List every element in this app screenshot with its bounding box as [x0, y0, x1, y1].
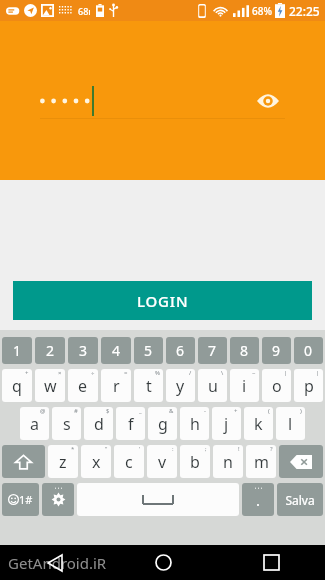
button[interactable]: f — [116, 407, 145, 440]
staticText: h — [190, 413, 200, 435]
button[interactable]: 3 — [68, 337, 98, 364]
button[interactable]: p — [294, 369, 323, 402]
button[interactable]: Back — [0, 545, 109, 580]
staticText: 1# — [19, 492, 33, 507]
button[interactable]: 7 — [198, 337, 227, 364]
button[interactable]: 6 — [166, 337, 195, 364]
staticText: ÷ — [91, 369, 95, 377]
button[interactable]: 8 — [230, 337, 259, 364]
staticText: + — [234, 407, 238, 415]
button[interactable]: u — [198, 369, 227, 402]
staticText: 1 — [13, 341, 22, 360]
staticText: s — [63, 413, 71, 435]
button[interactable]: d — [84, 407, 113, 440]
staticText: $ — [106, 407, 110, 415]
button[interactable]: z — [48, 445, 78, 478]
staticText: 22:25 — [289, 3, 320, 19]
button[interactable]: n — [213, 445, 243, 478]
button[interactable]: l — [276, 407, 305, 440]
staticText: \ — [221, 369, 224, 377]
button[interactable]: 4 — [101, 337, 131, 364]
button[interactable]: v — [147, 445, 177, 478]
staticText: 4 — [112, 341, 121, 360]
staticText: t — [146, 375, 152, 397]
staticText: - — [204, 407, 206, 415]
button[interactable]: s — [52, 407, 81, 440]
staticText: e — [78, 375, 88, 397]
button[interactable]: b — [180, 445, 210, 478]
button[interactable]: Keyboard settings — [42, 483, 74, 516]
staticText: | — [284, 369, 288, 377]
button[interactable]: e — [68, 369, 98, 402]
button[interactable]: Backspace — [279, 445, 323, 478]
staticText: c — [125, 451, 133, 473]
staticText: ! — [238, 445, 240, 453]
staticText: LOGIN — [137, 291, 189, 311]
button[interactable]: 5 — [134, 337, 163, 364]
button[interactable]: Home — [109, 545, 217, 580]
staticText: ) — [300, 407, 302, 415]
button[interactable]: w — [35, 369, 65, 402]
staticText: @ — [40, 407, 46, 415]
button[interactable]: c — [114, 445, 144, 478]
button[interactable]: Recent apps — [217, 545, 325, 580]
staticText: ( — [268, 407, 270, 415]
button[interactable]: 1 — [2, 337, 32, 364]
button[interactable]: 0 — [294, 337, 323, 364]
button[interactable]: j — [212, 407, 241, 440]
button[interactable]: Space — [77, 483, 239, 516]
button[interactable]: r — [101, 369, 131, 402]
button[interactable]: y — [166, 369, 195, 402]
staticText: GetAndroid.iR — [8, 553, 107, 573]
button[interactable]: t — [134, 369, 163, 402]
staticText: w — [44, 375, 57, 397]
staticText: " — [105, 445, 108, 453]
staticText: ? — [270, 445, 273, 453]
staticText: / — [189, 369, 192, 377]
staticText: ⋯ — [254, 483, 263, 493]
button[interactable]: m — [246, 445, 276, 478]
staticText: 2 — [46, 341, 55, 360]
staticText: ' — [139, 445, 141, 453]
button[interactable]: Show password — [40, 83, 285, 119]
staticText: u — [208, 375, 218, 397]
button[interactable]: Salva — [277, 483, 323, 516]
staticText: 68% — [252, 4, 272, 18]
staticText: 0 — [304, 341, 313, 360]
staticText: 5 — [144, 341, 153, 360]
staticText: 7 — [208, 341, 217, 360]
button[interactable]: x — [81, 445, 111, 478]
button[interactable]: i — [230, 369, 259, 402]
staticText: = — [124, 369, 128, 377]
staticText: b — [190, 451, 200, 473]
staticText: r — [113, 375, 120, 397]
staticText: Salva — [285, 492, 315, 508]
staticText: : — [172, 445, 174, 453]
staticText: q — [12, 375, 22, 397]
staticText: v — [158, 451, 167, 473]
staticText: # — [74, 407, 78, 415]
staticText: o — [272, 375, 282, 397]
staticText: l — [288, 413, 293, 435]
button[interactable]: q — [2, 369, 32, 402]
button[interactable]: o — [262, 369, 291, 402]
button[interactable]: a — [20, 407, 49, 440]
staticText: a — [30, 413, 39, 435]
staticText: 3 — [79, 341, 88, 360]
button[interactable]: h — [180, 407, 209, 440]
button[interactable]: 2 — [35, 337, 65, 364]
staticText: p — [304, 375, 314, 397]
button[interactable]: 9 — [262, 337, 291, 364]
button[interactable]: Show password — [251, 84, 285, 118]
staticText: g — [158, 413, 168, 435]
staticText: ~ — [252, 369, 256, 377]
button[interactable]: Symbols — [2, 483, 39, 516]
staticText: × — [58, 369, 62, 377]
button[interactable]: k — [244, 407, 273, 440]
button[interactable]: Shift — [2, 445, 45, 478]
button[interactable]: LOGIN — [13, 281, 312, 320]
staticText: . — [256, 490, 261, 510]
staticText: f — [128, 413, 134, 435]
button[interactable]: ⋯ — [242, 483, 274, 516]
button[interactable]: g — [148, 407, 177, 440]
